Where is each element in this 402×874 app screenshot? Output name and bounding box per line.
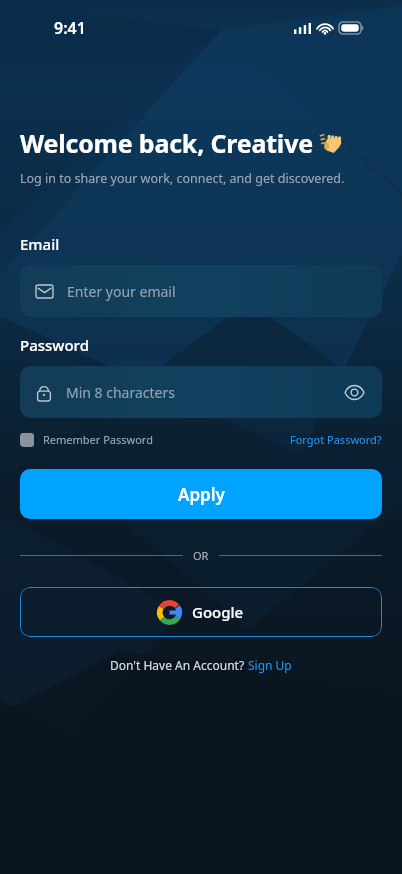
- staticText: Welcome back, Creative: [20, 126, 313, 160]
- button[interactable]: Apply: [20, 469, 382, 519]
- staticText: Forgot Password?: [290, 432, 382, 447]
- staticText: Sign Up: [248, 657, 292, 673]
- staticText: Enter your email: [67, 282, 176, 301]
- button[interactable]: Remember Password: [20, 432, 153, 447]
- staticText: Email: [20, 234, 60, 254]
- button[interactable]: Google: [20, 587, 382, 637]
- button[interactable]: Enter your email: [20, 265, 382, 317]
- button[interactable]: Show password: [342, 380, 366, 404]
- staticText: Log in to share your work, connect, and …: [20, 170, 345, 187]
- staticText: Min 8 characters: [66, 383, 175, 402]
- staticText: Apply: [178, 483, 225, 506]
- staticText: 9:41: [54, 17, 86, 39]
- staticText: Don't Have An Account?: [110, 657, 248, 673]
- button[interactable]: Min 8 characters: [20, 366, 382, 418]
- button[interactable]: Forgot Password?: [290, 432, 382, 447]
- staticText: Remember Password: [43, 432, 153, 447]
- staticText: Password: [20, 335, 89, 355]
- staticText: Google: [192, 602, 244, 622]
- staticText: OR: [193, 548, 209, 563]
- button[interactable]: Sign Up: [248, 657, 292, 673]
